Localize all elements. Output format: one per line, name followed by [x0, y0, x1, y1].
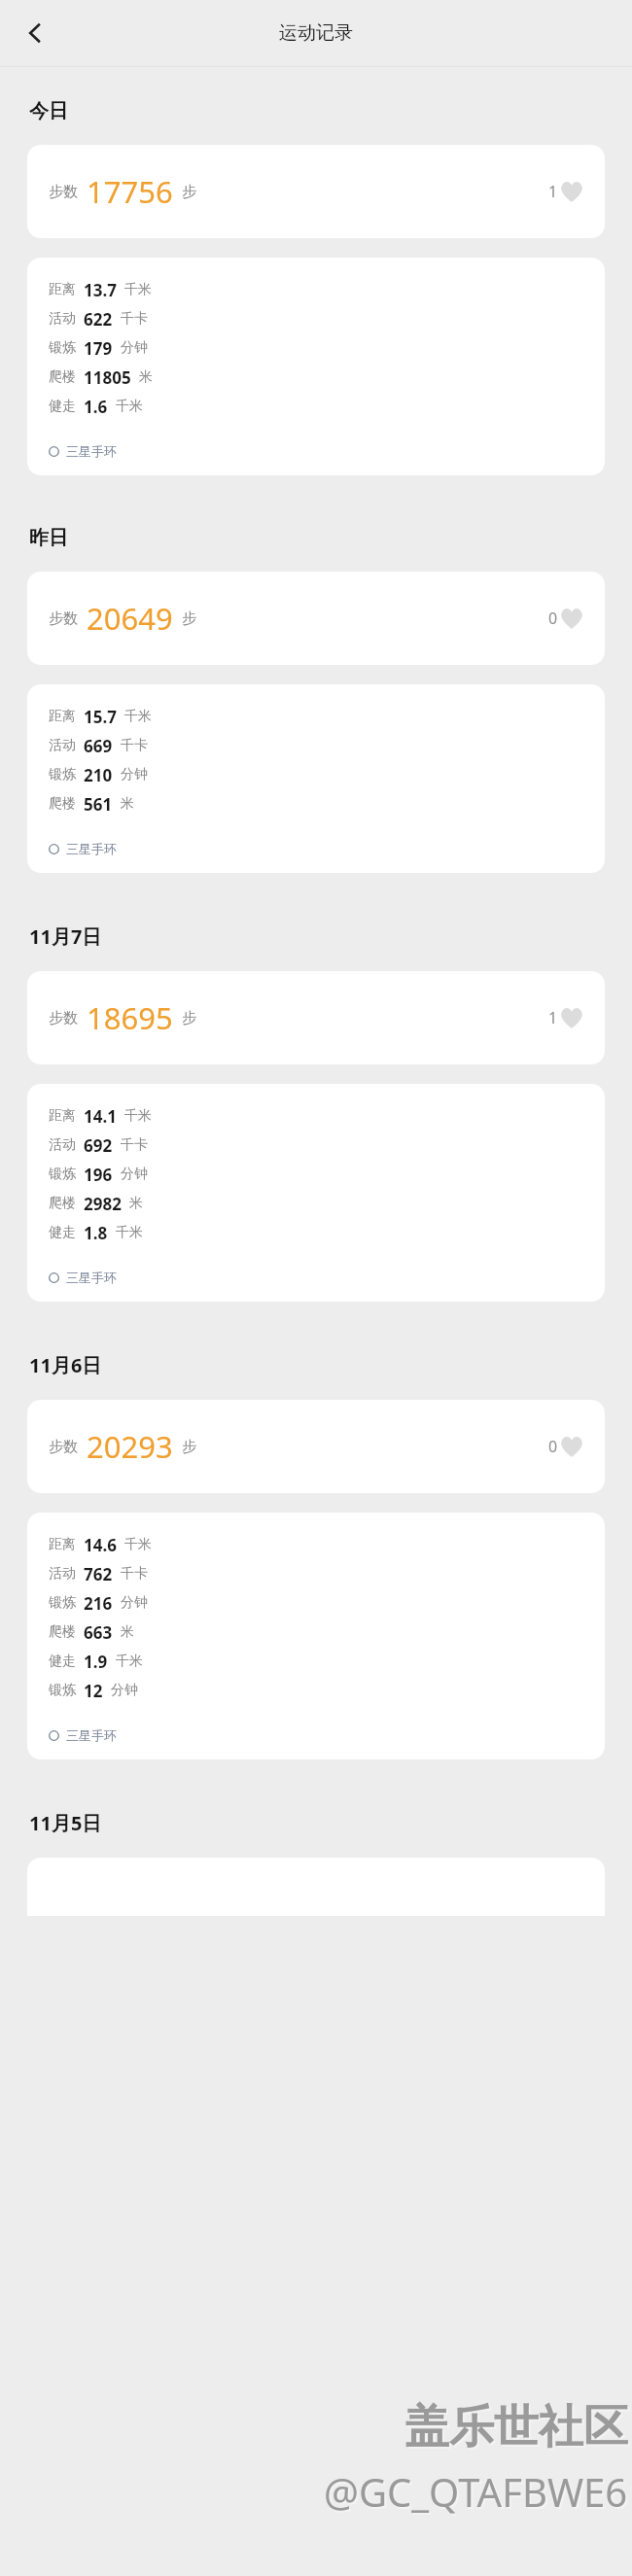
staticText: 三星手环	[66, 841, 117, 856]
staticText: 锻炼	[49, 339, 76, 357]
staticText: 距离	[49, 1536, 76, 1553]
staticText: 锻炼	[49, 1682, 76, 1699]
staticText: 爬楼	[49, 368, 76, 386]
staticText: 千米	[124, 1536, 152, 1553]
staticText: 步数	[49, 1009, 78, 1027]
staticText: 20293	[87, 1426, 173, 1467]
staticText: 11月5日	[29, 1810, 102, 1836]
staticText: 活动	[49, 310, 76, 328]
button[interactable]: Back	[14, 12, 56, 54]
staticText: 锻炼	[49, 1166, 76, 1183]
staticText: 千米	[116, 1224, 143, 1241]
staticText: 千米	[124, 281, 152, 298]
staticText: 爬楼	[49, 1623, 76, 1641]
staticText: 健走	[49, 1224, 76, 1241]
staticText: 千米	[124, 1107, 152, 1125]
staticText: 14.1	[84, 1105, 117, 1128]
button[interactable]: 步数	[27, 145, 605, 238]
staticText: 爬楼	[49, 1195, 76, 1212]
staticText: 步	[182, 609, 196, 628]
staticText: 步	[182, 1438, 196, 1456]
button[interactable]: 距离	[27, 1513, 605, 1759]
button[interactable]: 距离	[27, 1084, 605, 1302]
staticText: 米	[121, 795, 134, 813]
button[interactable]: 步数	[27, 971, 605, 1064]
staticText: 13.7	[84, 279, 117, 301]
staticText: 分钟	[121, 1594, 148, 1612]
staticText: 20649	[87, 598, 173, 639]
button[interactable]: 步数	[27, 1400, 605, 1493]
staticText: 18695	[87, 997, 173, 1038]
staticText: 步	[182, 183, 196, 201]
staticText: 活动	[49, 1136, 76, 1154]
staticText: 762	[84, 1563, 113, 1585]
staticText: 0	[548, 1436, 558, 1457]
staticText: 1.9	[84, 1651, 108, 1673]
staticText: 561	[84, 793, 113, 816]
staticText: 盖乐世社区	[406, 2401, 630, 2457]
staticText: 12	[84, 1680, 103, 1702]
staticText: 622	[84, 308, 113, 331]
staticText: 步数	[49, 183, 78, 201]
staticText: 三星手环	[66, 443, 117, 459]
staticText: @GC_QTAFBWE6	[326, 2467, 630, 2520]
staticText: 距离	[49, 281, 76, 298]
staticText: 2982	[84, 1193, 122, 1215]
staticText: 千卡	[121, 1565, 148, 1583]
staticText: 今日	[29, 99, 68, 123]
staticText: 669	[84, 735, 113, 757]
staticText: 千卡	[121, 737, 148, 754]
staticText: 距离	[49, 1107, 76, 1125]
staticText: 活动	[49, 1565, 76, 1583]
staticText: 0	[548, 608, 558, 629]
staticText: 196	[84, 1164, 113, 1186]
staticText: 11月6日	[29, 1352, 102, 1378]
staticText: 步数	[49, 609, 78, 628]
staticText: 千米	[116, 1653, 143, 1670]
staticText: 三星手环	[66, 1727, 117, 1743]
staticText: 步	[182, 1009, 196, 1027]
staticText: 米	[129, 1195, 143, 1212]
staticText: 千米	[116, 398, 143, 415]
staticText: 三星手环	[66, 1270, 117, 1285]
staticText: 健走	[49, 398, 76, 415]
staticText: 11805	[84, 366, 131, 389]
button[interactable]: 距离	[27, 258, 605, 475]
staticText: 15.7	[84, 706, 117, 728]
staticText: 千米	[124, 708, 152, 725]
staticText: 米	[139, 368, 153, 386]
staticText: 爬楼	[49, 795, 76, 813]
staticText: 179	[84, 337, 113, 360]
staticText: 663	[84, 1621, 113, 1644]
staticText: 1.6	[84, 396, 108, 418]
staticText: 1	[548, 1007, 558, 1028]
staticText: 14.6	[84, 1534, 117, 1556]
staticText: 分钟	[121, 339, 148, 357]
staticText: 692	[84, 1134, 113, 1157]
staticText: 分钟	[111, 1682, 138, 1699]
staticText: 11月7日	[29, 923, 102, 950]
staticText: 1	[548, 181, 558, 202]
staticText: 216	[84, 1592, 113, 1615]
button[interactable]: 步数	[27, 572, 605, 665]
staticText: 千卡	[121, 310, 148, 328]
button[interactable]: 距离	[27, 684, 605, 873]
staticText: 盖乐世社区	[404, 2399, 628, 2455]
staticText: 分钟	[121, 1166, 148, 1183]
staticText: @GC_QTAFBWE6	[324, 2465, 628, 2518]
staticText: 千卡	[121, 1136, 148, 1154]
staticText: 分钟	[121, 766, 148, 783]
staticText: 运动记录	[279, 21, 353, 45]
staticText: 1.8	[84, 1222, 108, 1244]
staticText: 步数	[49, 1438, 78, 1456]
staticText: 昨日	[29, 526, 68, 550]
staticText: 17756	[87, 171, 173, 212]
staticText: 210	[84, 764, 113, 786]
staticText: 米	[121, 1623, 134, 1641]
staticText: 活动	[49, 737, 76, 754]
staticText: 锻炼	[49, 766, 76, 783]
staticText: 锻炼	[49, 1594, 76, 1612]
staticText: 距离	[49, 708, 76, 725]
staticText: 健走	[49, 1653, 76, 1670]
